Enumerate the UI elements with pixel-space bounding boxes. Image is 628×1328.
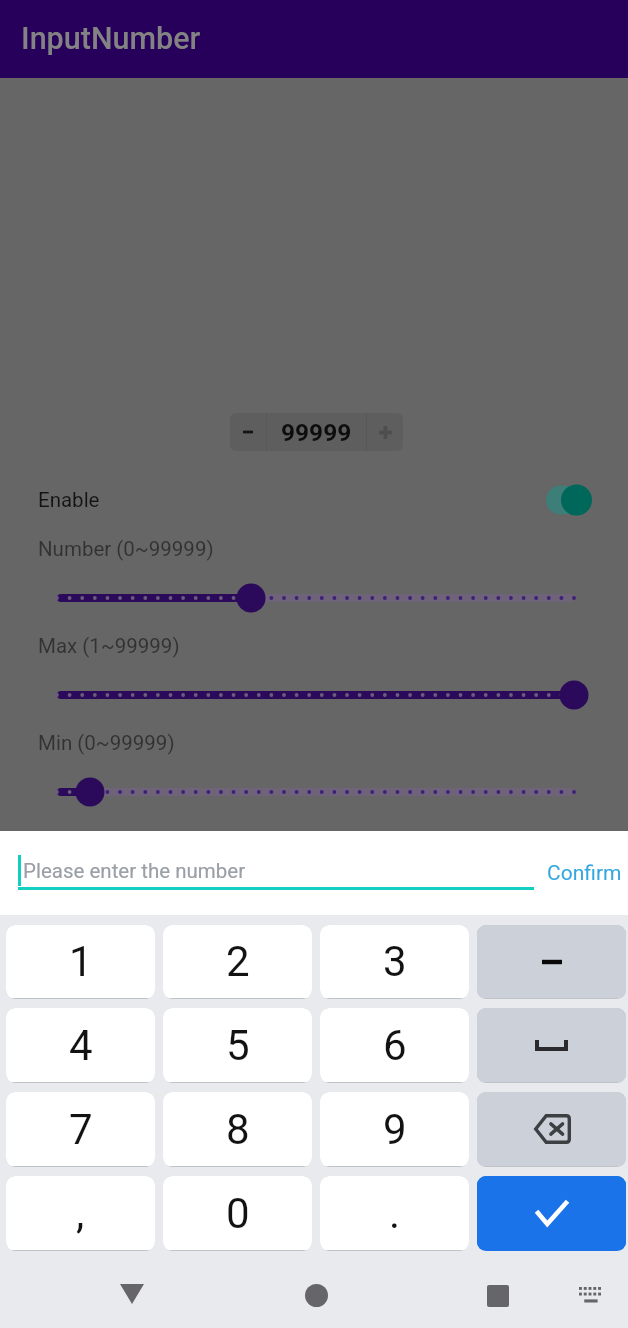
button[interactable]: Back <box>102 1263 162 1328</box>
button[interactable]: Enable <box>546 484 592 516</box>
button[interactable]: Please enter the number <box>18 855 534 889</box>
staticText: . <box>389 1189 401 1238</box>
button[interactable]: 9 <box>320 1092 469 1166</box>
button[interactable]: Minus <box>477 925 626 998</box>
staticText: Confirm <box>547 861 622 886</box>
staticText: Max (1~99999) <box>38 634 180 658</box>
staticText: 1 <box>69 937 93 986</box>
button[interactable]: Confirm <box>477 1176 626 1250</box>
staticText: Enable <box>38 488 100 512</box>
button[interactable]: 8 <box>163 1092 312 1166</box>
button[interactable]: 2 <box>163 925 312 998</box>
button[interactable]: 7 <box>6 1092 155 1166</box>
button[interactable]: 6 <box>320 1008 469 1082</box>
button[interactable]: 4 <box>6 1008 155 1082</box>
staticText: Min (0~99999) <box>38 731 175 755</box>
staticText: 4 <box>69 1021 93 1070</box>
button[interactable]: 5 <box>163 1008 312 1082</box>
button[interactable]: Increase <box>367 413 403 451</box>
staticText: , <box>76 1189 85 1238</box>
staticText: 2 <box>226 937 250 986</box>
staticText: 7 <box>69 1105 93 1154</box>
staticText: 3 <box>383 937 407 986</box>
staticText: InputNumber <box>21 21 201 57</box>
button[interactable]: Space <box>477 1008 626 1082</box>
staticText: 6 <box>383 1021 407 1070</box>
button[interactable] <box>0 776 628 808</box>
button[interactable] <box>0 582 628 614</box>
button[interactable]: , <box>6 1176 155 1250</box>
button[interactable]: . <box>320 1176 469 1250</box>
button[interactable]: Switch keyboard <box>560 1263 620 1328</box>
button[interactable]: Delete <box>477 1092 626 1166</box>
button[interactable]: Home <box>286 1263 346 1328</box>
staticText: Please enter the number <box>23 859 246 883</box>
staticText: 0 <box>226 1189 250 1238</box>
button[interactable]: 0 <box>163 1176 312 1250</box>
button[interactable]: 3 <box>320 925 469 998</box>
staticText: 9 <box>383 1105 407 1154</box>
button[interactable]: Decrease <box>230 413 266 451</box>
staticText: 5 <box>226 1021 250 1070</box>
button[interactable] <box>0 679 628 711</box>
button[interactable]: Confirm <box>540 851 628 895</box>
staticText: Number (0~99999) <box>38 537 214 561</box>
button[interactable]: 1 <box>6 925 155 998</box>
button[interactable]: Enable <box>38 478 592 522</box>
staticText: 8 <box>226 1105 250 1154</box>
staticText: 99999 <box>281 418 352 447</box>
button[interactable]: Recents <box>468 1263 528 1328</box>
